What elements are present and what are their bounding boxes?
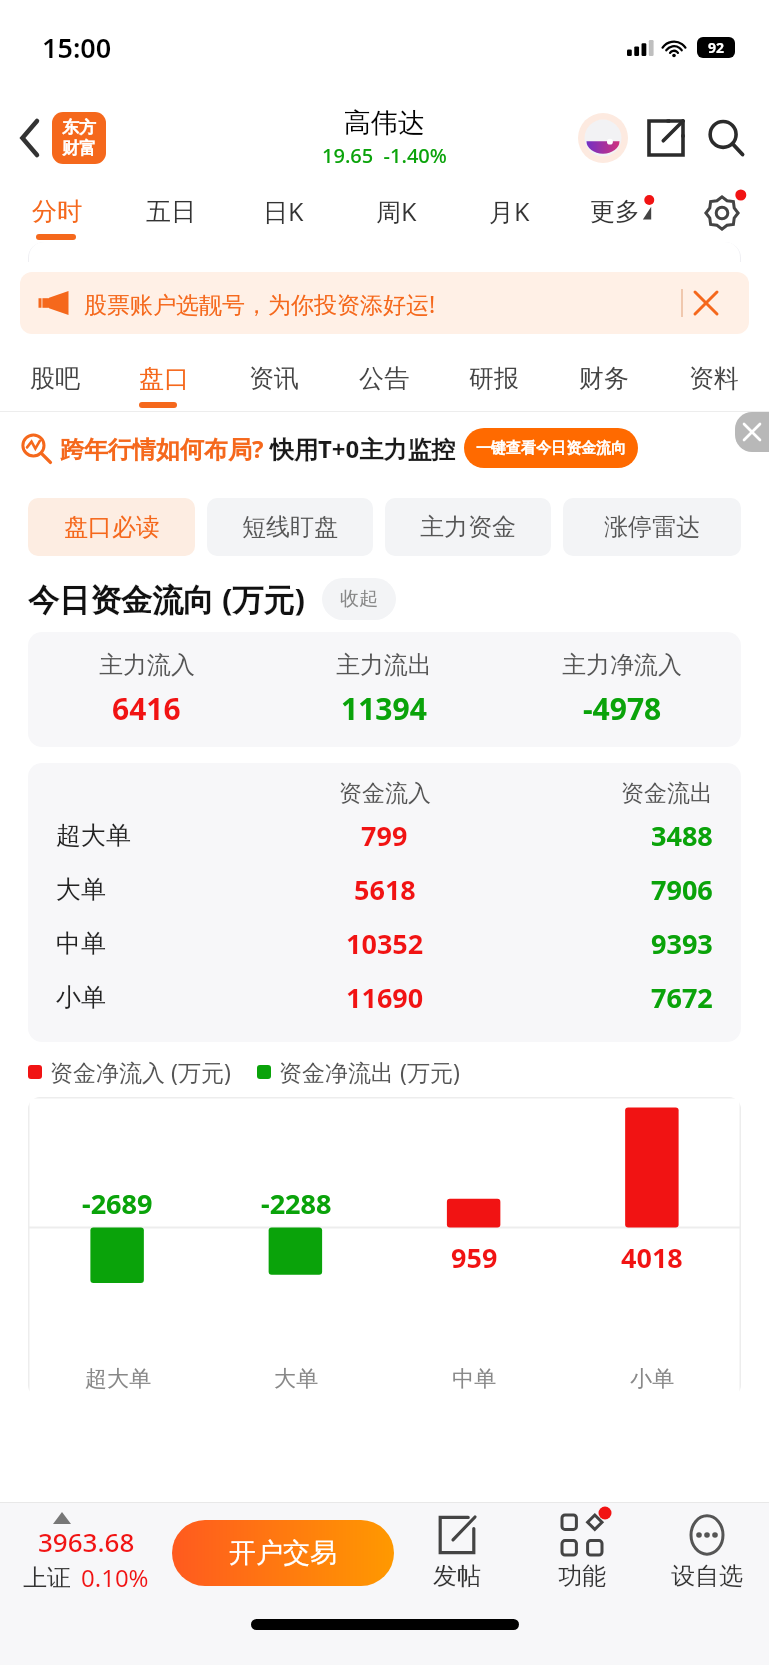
staticText: 中单: [56, 928, 106, 959]
staticText: 收起: [340, 587, 378, 611]
staticText: 小单: [56, 982, 106, 1013]
button[interactable]: East Money: [52, 112, 106, 164]
staticText: 资金流出: [621, 779, 713, 808]
staticText: 快用T+0主力监控: [270, 432, 456, 465]
staticText: 92: [708, 38, 725, 57]
staticText: -4978: [583, 688, 662, 729]
button[interactable]: 一键查看今日资金流向: [464, 428, 638, 468]
staticText: 涨停雷达: [604, 512, 700, 542]
button[interactable]: 研报: [439, 344, 549, 412]
staticText: 3488: [651, 817, 713, 854]
staticText: 股吧: [30, 363, 80, 394]
staticText: 短线盯盘: [242, 512, 338, 542]
button[interactable]: 发帖: [394, 1515, 519, 1591]
button[interactable]: 月K: [453, 180, 566, 242]
staticText: 盘口: [139, 363, 189, 394]
staticText: -2689: [82, 1185, 153, 1222]
staticText: 主力流入: [99, 650, 195, 680]
button[interactable]: 涨停雷达: [563, 498, 741, 556]
staticText: 上证: [23, 1563, 71, 1593]
staticText: 大单: [274, 1365, 318, 1393]
staticText: 0.10%: [81, 1561, 149, 1594]
staticText: 11690: [346, 979, 424, 1016]
staticText: 周K: [376, 194, 417, 228]
staticText: 高伟达: [344, 106, 425, 140]
button[interactable]: 主力资金: [385, 498, 551, 556]
button[interactable]: 跨年行情如何布局?: [0, 412, 769, 484]
staticText: 资金净流入 (万元): [50, 1056, 231, 1087]
staticText: -2288: [261, 1185, 332, 1222]
button[interactable]: 股票账户选靓号，为你投资添好运!: [20, 272, 749, 334]
staticText: 10352: [346, 925, 424, 962]
button[interactable]: 盘口必读: [28, 498, 195, 556]
staticText: 跨年行情如何布局?: [60, 432, 264, 465]
staticText: 6416: [112, 688, 181, 729]
staticText: 4018: [621, 1239, 683, 1276]
button[interactable]: 资金流入: [28, 763, 741, 1042]
staticText: 财富: [62, 138, 96, 159]
button[interactable]: Back: [12, 115, 48, 161]
button[interactable]: 主力流入: [28, 632, 741, 747]
staticText: 中单: [452, 1365, 496, 1393]
staticText: 更多: [590, 196, 640, 227]
staticText: 资讯: [249, 363, 299, 394]
staticText: 研报: [469, 363, 519, 394]
staticText: 日K: [263, 194, 304, 228]
staticText: 开户交易: [229, 1536, 337, 1570]
staticText: 7672: [651, 979, 713, 1016]
staticText: 资金流入: [339, 779, 431, 808]
button[interactable]: 周K: [340, 180, 453, 242]
button[interactable]: 分时: [0, 180, 114, 242]
button[interactable]: 资料: [659, 344, 769, 412]
staticText: 今日资金流向 (万元): [28, 578, 306, 620]
staticText: 11394: [341, 688, 427, 729]
staticText: 9393: [651, 925, 713, 962]
staticText: 799: [361, 817, 408, 854]
staticText: 一键查看今日资金流向: [476, 439, 626, 458]
button[interactable]: Share: [639, 111, 693, 165]
staticText: 盘口必读: [64, 512, 160, 542]
staticText: 大单: [56, 874, 106, 905]
button[interactable]: 开户交易: [172, 1520, 394, 1586]
staticText: 7906: [651, 871, 713, 908]
button[interactable]: 收起: [322, 578, 396, 620]
staticText: 19.65 -1.40%: [322, 142, 447, 169]
staticText: 959: [451, 1239, 498, 1276]
staticText: 主力资金: [420, 512, 516, 542]
staticText: 财务: [579, 363, 629, 394]
staticText: 超大单: [85, 1365, 151, 1393]
staticText: 主力净流入: [562, 650, 682, 680]
staticText: 3963.68: [38, 1524, 135, 1559]
button[interactable]: 设自选: [644, 1515, 769, 1591]
staticText: 主力流出: [336, 650, 432, 680]
staticText: 股票账户选靓号，为你投资添好运!: [84, 288, 436, 319]
staticText: 月K: [489, 194, 530, 228]
staticText: 五日: [146, 196, 196, 227]
staticText: 分时: [32, 196, 82, 227]
button[interactable]: 日K: [227, 180, 340, 242]
staticText: 设自选: [671, 1561, 743, 1591]
button[interactable]: 五日: [114, 180, 227, 242]
button[interactable]: 盘口: [109, 344, 219, 412]
staticText: 公告: [359, 363, 409, 394]
button[interactable]: 公告: [329, 344, 439, 412]
button[interactable]: 资讯: [219, 344, 329, 412]
staticText: 5618: [354, 871, 416, 908]
staticText: 功能: [558, 1561, 606, 1591]
button[interactable]: Search: [697, 109, 755, 167]
button[interactable]: Settings: [679, 180, 769, 242]
button[interactable]: Close ad: [735, 412, 769, 452]
button[interactable]: 财务: [549, 344, 659, 412]
staticText: 15:00: [42, 29, 112, 66]
button[interactable]: AI assistant: [575, 110, 631, 166]
button[interactable]: 3963.68: [0, 1512, 172, 1594]
staticText: 东方: [62, 117, 96, 138]
staticText: 资料: [689, 363, 739, 394]
button[interactable]: 功能: [519, 1515, 644, 1591]
button[interactable]: 股吧: [0, 344, 109, 412]
button[interactable]: 短线盯盘: [207, 498, 373, 556]
staticText: 小单: [630, 1365, 674, 1393]
button[interactable]: Close: [683, 272, 729, 334]
button[interactable]: 更多: [566, 180, 679, 242]
staticText: 发帖: [433, 1561, 481, 1591]
